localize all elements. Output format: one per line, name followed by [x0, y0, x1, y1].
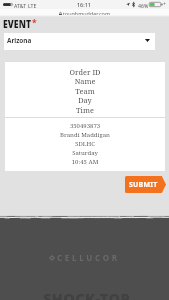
staticText: Brandi Maddigan — [5, 131, 165, 139]
staticText: AT&T — [14, 2, 27, 9]
staticText: SUBMIT — [129, 180, 158, 190]
staticText: 46% — [138, 2, 149, 9]
staticText: SHOCK-TOP — [43, 288, 131, 300]
staticText: 16:11 — [77, 1, 91, 8]
staticText: EVENT — [3, 17, 32, 31]
staticText: * — [32, 17, 37, 29]
staticText: Saturday — [5, 149, 165, 157]
staticText: Name — [5, 76, 165, 86]
staticText: 5DLHC — [5, 140, 165, 148]
button[interactable]: SUBMIT — [125, 176, 166, 193]
staticText: CELLUCOR — [57, 252, 120, 263]
button[interactable]: Arizona — [4, 33, 155, 50]
staticText: LTE — [28, 2, 37, 9]
staticText: 10:45 AM — [5, 158, 165, 166]
staticText: Time — [5, 105, 165, 115]
staticText: + — [163, 1, 166, 8]
staticText: Order ID — [5, 67, 165, 77]
staticText: Arizona — [7, 36, 32, 45]
staticText: toughmudder.com — [63, 10, 110, 17]
staticText: Day — [5, 95, 165, 105]
staticText: 350493873 — [5, 122, 165, 130]
staticText: Team — [5, 86, 165, 96]
